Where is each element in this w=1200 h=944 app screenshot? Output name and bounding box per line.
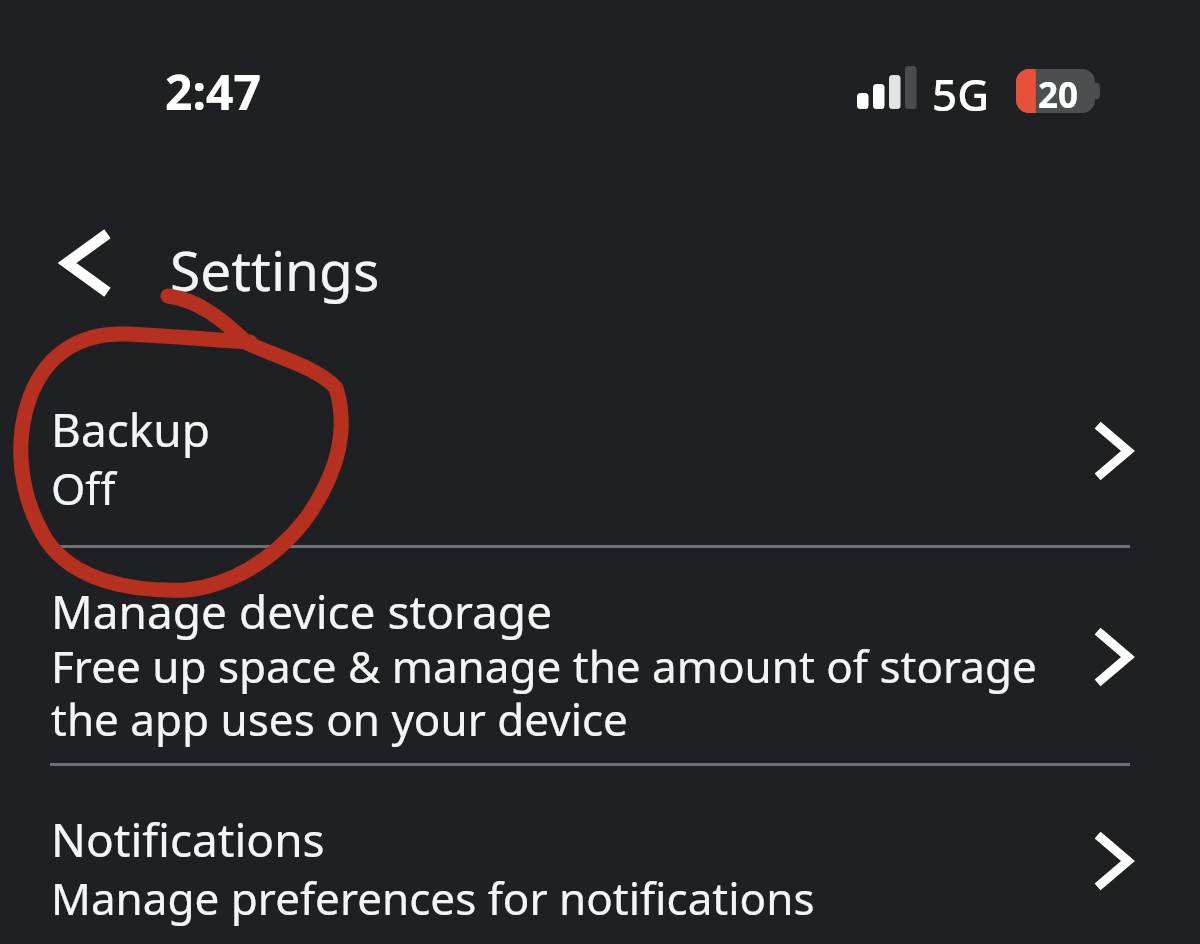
staticText: 20: [1038, 71, 1079, 119]
staticText: Off: [51, 458, 116, 518]
staticText: Manage preferences for notifications: [51, 868, 815, 928]
staticText: Manage device storage: [51, 580, 553, 643]
button[interactable]: Notifications: [0, 766, 1200, 944]
button[interactable]: Manage device storage: [0, 548, 1200, 763]
staticText: 5G: [932, 64, 990, 124]
staticText: Backup: [51, 398, 211, 461]
button[interactable]: Backup: [0, 370, 1200, 545]
staticText: Settings: [170, 232, 380, 307]
staticText: Free up space & manage the amount of sto…: [51, 636, 1037, 748]
staticText: 2:47: [165, 59, 261, 124]
staticText: Notifications: [51, 808, 325, 871]
button[interactable]: Back: [46, 218, 136, 308]
